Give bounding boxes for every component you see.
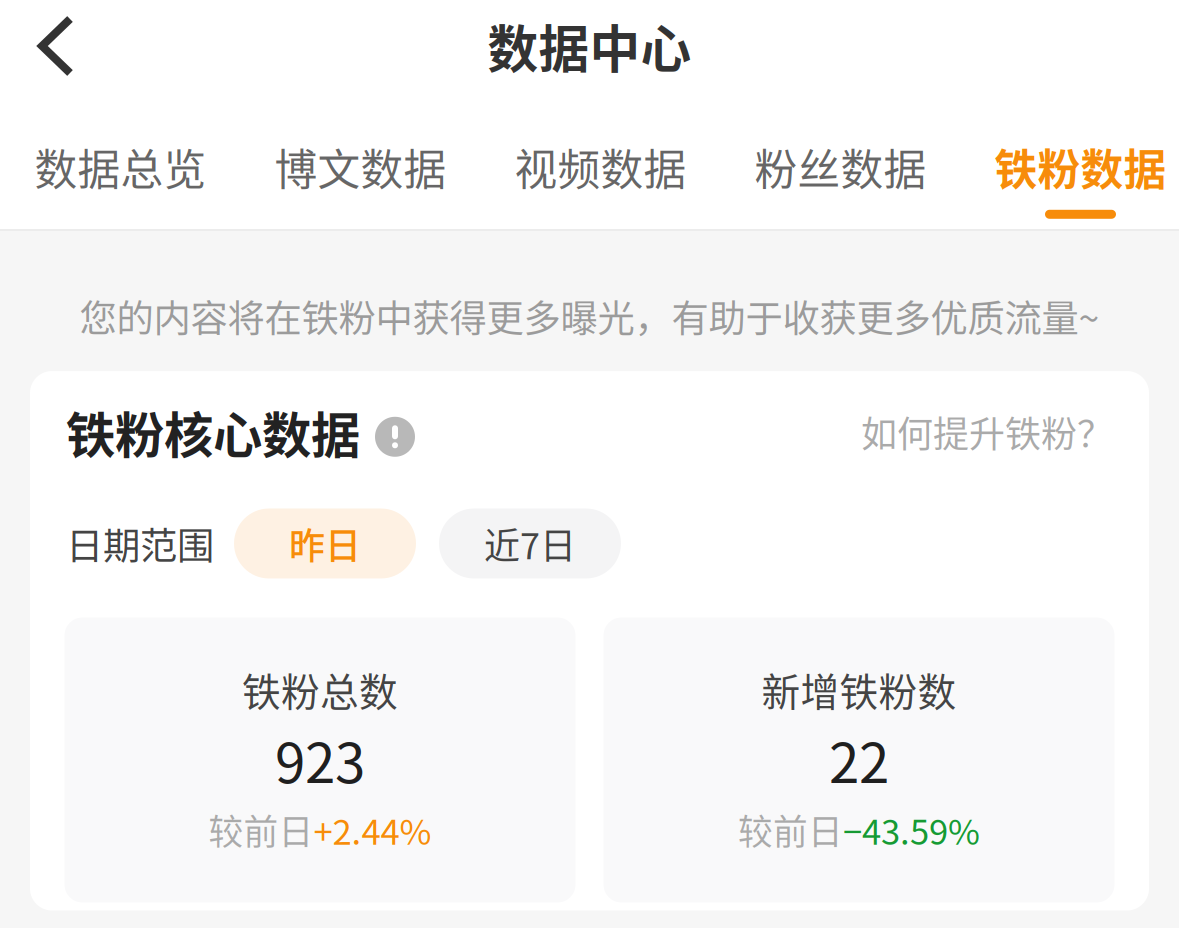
staticText: 视频数据 — [514, 136, 686, 198]
button[interactable]: 粉丝数据 — [720, 92, 960, 229]
staticText: 22 — [829, 719, 889, 799]
button[interactable]: Back — [0, 0, 100, 92]
button[interactable]: 如何提升铁粉？ — [861, 406, 1113, 458]
staticText: 铁粉核心数据 — [66, 396, 360, 467]
staticText: 昨日 — [289, 517, 361, 569]
button[interactable]: 铁粉数据 — [960, 92, 1179, 229]
button[interactable]: 数据总览 — [0, 92, 240, 229]
staticText: 新增铁粉数 — [761, 661, 956, 717]
staticText: +2.44% — [313, 805, 431, 855]
staticText: 日期范围 — [66, 516, 214, 571]
staticText: 较前日 — [208, 805, 313, 855]
staticText: 近7日 — [484, 517, 576, 569]
staticText: 粉丝数据 — [754, 136, 926, 198]
staticText: 数据中心 — [487, 9, 691, 83]
staticText: 如何提升铁粉？ — [861, 406, 1113, 458]
staticText: 923 — [275, 719, 365, 799]
button[interactable]: 近7日 — [439, 508, 621, 578]
staticText: 铁粉数据 — [994, 136, 1166, 198]
staticText: 您的内容将在铁粉中获得更多曝光，有助于收获更多优质流量~ — [79, 289, 1099, 343]
button[interactable]: 昨日 — [234, 508, 416, 578]
button[interactable]: 博文数据 — [240, 92, 480, 229]
staticText: 数据总览 — [34, 136, 206, 198]
staticText: −43.59% — [843, 805, 980, 855]
button[interactable]: 视频数据 — [480, 92, 720, 229]
staticText: 铁粉总数 — [242, 661, 398, 717]
staticText: 较前日 — [738, 805, 843, 855]
staticText: 博文数据 — [274, 136, 446, 198]
